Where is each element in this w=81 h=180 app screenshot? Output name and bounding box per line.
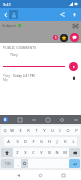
staticText: H bbox=[48, 139, 51, 144]
button[interactable]: G bbox=[37, 137, 45, 146]
button[interactable]: C bbox=[29, 148, 37, 157]
button[interactable]: U bbox=[48, 126, 56, 135]
staticText: . bbox=[65, 161, 67, 166]
staticText: U bbox=[51, 128, 54, 133]
staticText: W bbox=[10, 128, 14, 133]
button[interactable]: X bbox=[21, 148, 29, 157]
staticText: Subject bbox=[2, 23, 17, 28]
button[interactable]: , bbox=[14, 159, 21, 168]
button[interactable]: J bbox=[53, 137, 61, 146]
button[interactable]: Count bbox=[53, 35, 58, 40]
button[interactable]: Q bbox=[1, 126, 8, 135]
staticText: K bbox=[64, 139, 67, 144]
button[interactable]: Comment bbox=[70, 33, 79, 42]
button[interactable]: F bbox=[29, 137, 37, 146]
button[interactable]: H bbox=[45, 137, 53, 146]
button[interactable]: Google bbox=[3, 117, 8, 122]
button[interactable]: B bbox=[45, 148, 53, 157]
button[interactable]: N bbox=[53, 148, 61, 157]
staticText: A bbox=[7, 139, 10, 144]
button[interactable]: Expand bbox=[72, 22, 79, 29]
button[interactable]: D bbox=[21, 137, 29, 146]
staticText: O bbox=[66, 128, 70, 133]
button[interactable]: I bbox=[56, 126, 64, 135]
button[interactable]: Delete bbox=[70, 74, 78, 82]
staticText: Z bbox=[16, 150, 19, 155]
staticText: T bbox=[35, 128, 38, 133]
staticText: I bbox=[59, 128, 61, 133]
button[interactable]: V bbox=[37, 148, 45, 157]
staticText: G bbox=[40, 139, 43, 144]
staticText: G bbox=[4, 118, 7, 122]
button[interactable]: L bbox=[69, 137, 77, 146]
button[interactable]: More bbox=[73, 117, 79, 123]
button[interactable]: Play bbox=[69, 62, 78, 71]
button[interactable]: S bbox=[13, 137, 21, 146]
staticText: L bbox=[72, 139, 75, 144]
button[interactable]: R bbox=[24, 126, 32, 135]
staticText: D bbox=[24, 139, 27, 144]
staticText: S bbox=[16, 139, 19, 144]
staticText: P bbox=[75, 128, 78, 133]
staticText: B bbox=[48, 150, 51, 155]
button[interactable]: M bbox=[61, 148, 69, 157]
staticText: M bbox=[63, 150, 67, 155]
button[interactable]: Y bbox=[40, 126, 48, 135]
button[interactable]: Numbers bbox=[1, 159, 14, 168]
staticText: ?123 bbox=[5, 162, 11, 166]
staticText: N bbox=[55, 150, 59, 155]
staticText: They bbox=[10, 52, 18, 57]
button[interactable]: A bbox=[4, 137, 13, 146]
button[interactable]: Keyboard tool 4 bbox=[59, 117, 65, 123]
staticText: Q bbox=[3, 128, 7, 133]
button[interactable]: Home bbox=[36, 171, 45, 180]
staticText: F bbox=[32, 139, 35, 144]
button[interactable]: Shift bbox=[1, 148, 13, 157]
button[interactable]: Z bbox=[13, 148, 21, 157]
button[interactable]: Notifications bbox=[70, 10, 79, 19]
staticText: , bbox=[17, 161, 19, 166]
staticText: V bbox=[40, 150, 43, 155]
button[interactable]: E bbox=[16, 126, 24, 135]
staticText: X bbox=[24, 150, 27, 155]
button[interactable]: Back bbox=[14, 171, 23, 180]
button[interactable]: Avatar bbox=[9, 10, 18, 19]
button[interactable]: Backspace bbox=[69, 148, 80, 157]
button[interactable]: P bbox=[72, 126, 80, 135]
button[interactable]: T bbox=[32, 126, 40, 135]
button[interactable]: Keyboard tool 1 bbox=[17, 117, 23, 123]
staticText: PUBLIC COMMENTS bbox=[3, 45, 37, 50]
staticText: They bbox=[3, 74, 11, 78]
staticText: J bbox=[56, 139, 58, 144]
button[interactable]: W bbox=[8, 126, 16, 135]
staticText: C bbox=[32, 150, 35, 155]
staticText: E bbox=[19, 128, 22, 133]
button[interactable]: Star bbox=[60, 34, 68, 42]
button[interactable]: Back bbox=[1, 10, 10, 19]
staticText: 9:41 bbox=[3, 2, 11, 7]
button[interactable]: Emoji bbox=[21, 159, 28, 168]
staticText: My bbox=[3, 78, 8, 82]
button[interactable]: O bbox=[64, 126, 72, 135]
button[interactable]: K bbox=[61, 137, 69, 146]
button[interactable]: Keyboard tool 2 bbox=[31, 117, 37, 123]
staticText: Y bbox=[43, 128, 46, 133]
button[interactable]: Share bbox=[58, 10, 67, 19]
staticText: R bbox=[27, 128, 30, 133]
staticText: 1 bbox=[55, 36, 57, 40]
staticText: Today 2:41 PM bbox=[13, 74, 35, 78]
button[interactable]: Keyboard tool 3 bbox=[45, 117, 51, 123]
button[interactable]: Recents bbox=[59, 171, 68, 180]
button[interactable]: Enter bbox=[69, 159, 80, 168]
